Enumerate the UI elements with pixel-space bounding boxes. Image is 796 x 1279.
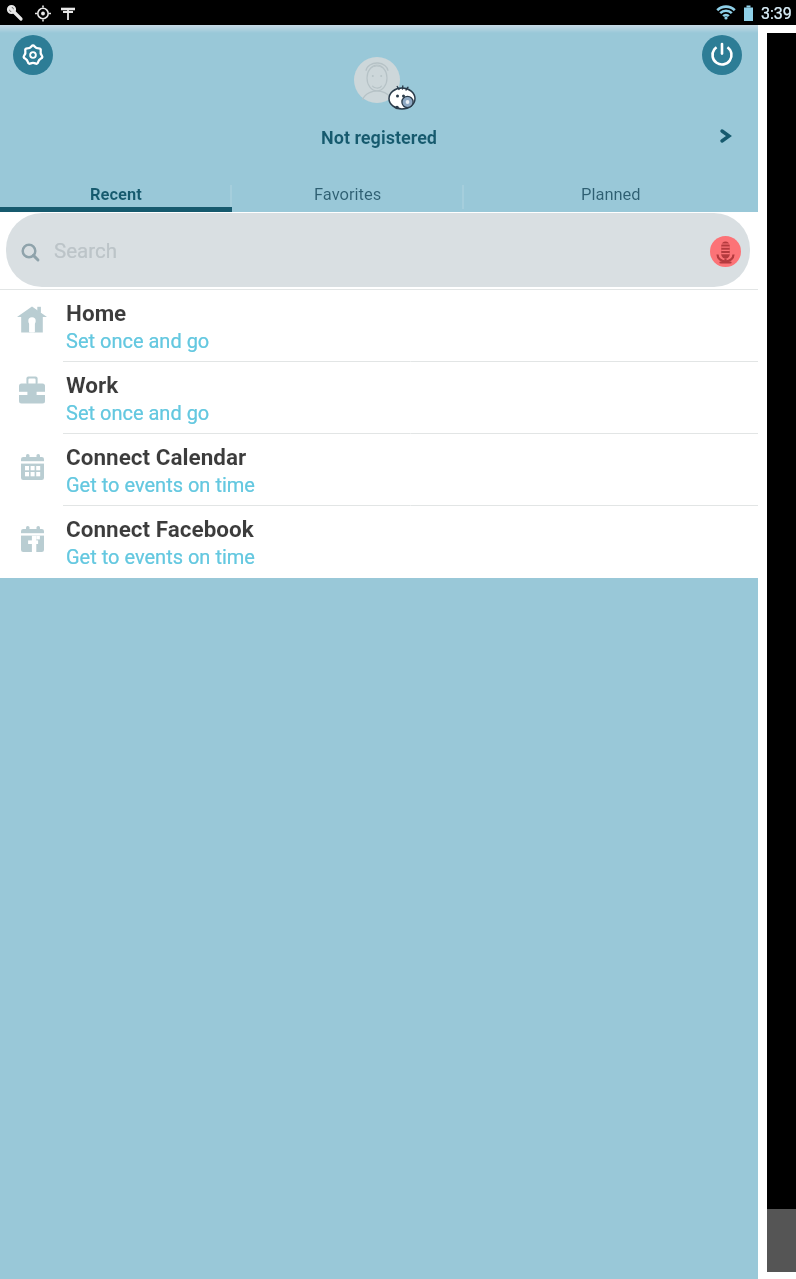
staticText: Connect Calendar [66, 444, 247, 470]
staticText: Connect Facebook [66, 516, 254, 542]
staticText: Get to events on time [66, 545, 255, 568]
staticText: Work [66, 372, 119, 398]
staticText: Not registered [321, 127, 438, 148]
staticText: Get to events on time [66, 473, 255, 496]
staticText: Favorites [314, 185, 382, 204]
button[interactable]: Planned [463, 178, 758, 212]
button[interactable]: Recent [0, 178, 232, 212]
button[interactable]: Favorites [232, 178, 463, 212]
staticText: Set once and go [66, 401, 210, 424]
button[interactable]: Voice search [710, 236, 741, 267]
button[interactable]: Not registered [0, 45, 758, 155]
staticText: Search [54, 239, 117, 263]
staticText: Recent [90, 185, 142, 204]
button[interactable]: Work [0, 362, 758, 434]
button[interactable]: Settings [13, 35, 53, 75]
staticText: Planned [581, 185, 641, 204]
staticText: Set once and go [66, 329, 210, 352]
button[interactable]: Connect Facebook [0, 506, 758, 578]
button[interactable]: Connect Calendar [0, 434, 758, 506]
button[interactable]: Search [6, 213, 750, 287]
button[interactable]: Home [0, 290, 758, 362]
staticText: 3:39 [761, 4, 792, 23]
button[interactable]: Power off [702, 35, 742, 75]
staticText: Home [66, 300, 127, 326]
